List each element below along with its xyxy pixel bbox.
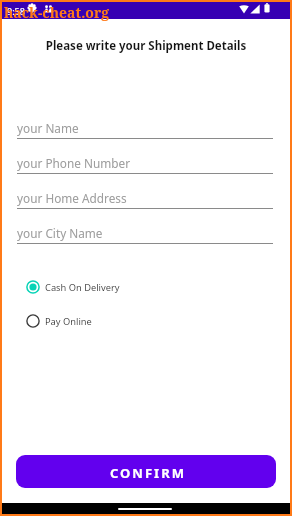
staticText: your Phone Number [17,155,131,171]
staticText: your Name [17,120,79,136]
button[interactable]: Cash On Delivery [26,280,120,294]
button[interactable]: CONFIRM [16,455,276,488]
button[interactable]: your City Name [17,225,273,244]
button[interactable]: your Home Address [17,190,273,209]
staticText: your Home Address [17,190,127,206]
staticText: Please write your Shipment Details [0,38,292,54]
staticText: your City Name [17,225,103,241]
button[interactable]: Pay Online [26,314,92,328]
button[interactable]: your Phone Number [17,155,273,174]
staticText: Cash On Delivery [45,281,120,294]
button[interactable]: your Name [17,120,273,139]
staticText: Pay Online [45,315,92,328]
staticText: 9:58 [7,5,25,17]
staticText: hack-cheat.org [4,3,110,22]
staticText: CONFIRM [110,464,186,482]
